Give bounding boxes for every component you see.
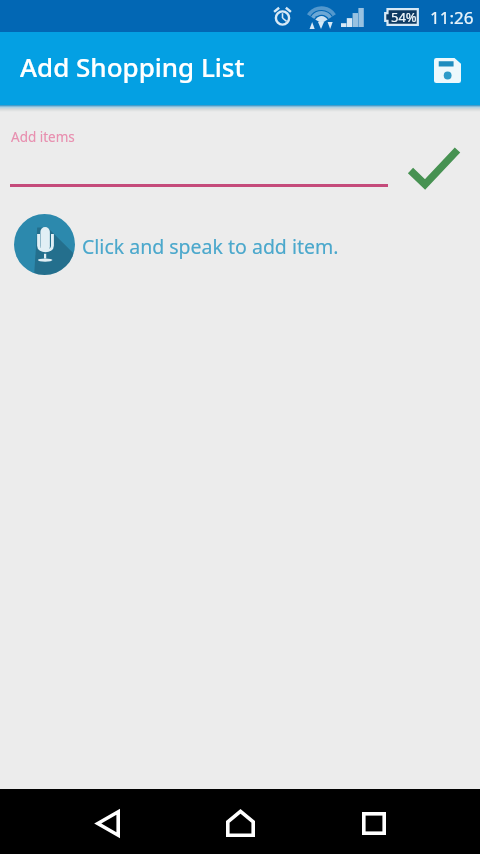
staticText: Add Shopping List (20, 49, 245, 84)
staticText: 54% (391, 8, 417, 26)
staticText: 11:26 (430, 6, 474, 29)
button[interactable]: Back (78, 792, 138, 854)
button[interactable]: Recents (344, 792, 404, 854)
button[interactable] (10, 147, 388, 187)
staticText: Click and speak to add item. (82, 233, 339, 260)
other: Speak (14, 214, 75, 275)
button[interactable]: Save (422, 45, 472, 95)
button[interactable]: Speak (0, 211, 480, 277)
button[interactable]: Confirm (398, 138, 470, 196)
staticText: Add items (11, 128, 75, 146)
button[interactable]: Home (210, 792, 270, 854)
